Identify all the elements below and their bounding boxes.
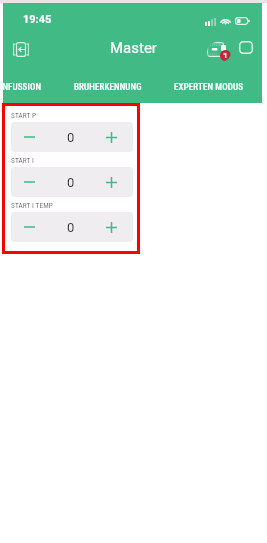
staticText: 1 <box>223 51 228 60</box>
button[interactable]: Increase START I TEMP <box>93 212 130 242</box>
button[interactable]: EXPERTEN MODUS <box>169 73 249 103</box>
button[interactable]: INFUSSION <box>3 73 59 103</box>
staticText: INFUSSION <box>3 82 42 93</box>
staticText: BRUHERKENNUNG <box>74 82 142 93</box>
staticText: 0 <box>67 175 75 190</box>
button[interactable]: Stop <box>234 36 257 59</box>
button[interactable]: Transfer <box>5 33 37 65</box>
staticText: 0 <box>67 130 75 145</box>
button[interactable]: Decrease START I <box>11 167 48 197</box>
staticText: EXPERTEN MODUS <box>174 82 244 93</box>
button[interactable]: Increase START I <box>93 167 130 197</box>
staticText: 0 <box>67 220 75 235</box>
button[interactable]: BRUHERKENNUNG <box>67 73 148 103</box>
staticText: START I <box>11 156 34 165</box>
staticText: 19:45 <box>23 13 52 26</box>
staticText: START I TEMP <box>11 201 53 210</box>
button[interactable]: Device status <box>207 42 231 62</box>
button[interactable]: Decrease START I TEMP <box>11 212 48 242</box>
button[interactable]: Decrease START P <box>11 122 48 152</box>
staticText: START P <box>11 111 37 120</box>
button[interactable]: Increase START P <box>93 122 130 152</box>
staticText: Master <box>110 39 157 57</box>
